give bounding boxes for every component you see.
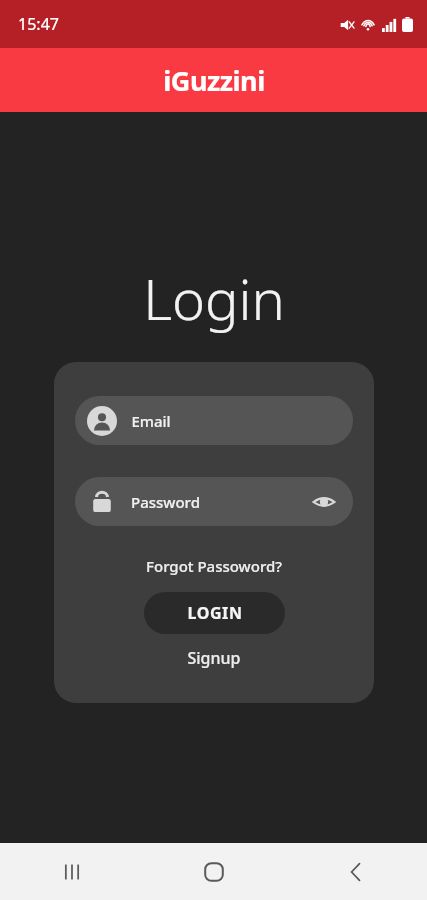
- button[interactable]: Back: [285, 843, 427, 900]
- button[interactable]: Forgot Passoword?: [140, 554, 288, 578]
- staticText: Email: [131, 411, 171, 431]
- staticText: LOGIN: [187, 602, 243, 624]
- staticText: iGuzzini: [163, 62, 265, 99]
- button[interactable]: Recent apps: [0, 843, 143, 900]
- button[interactable]: Password: [75, 477, 353, 526]
- staticText: Signup: [187, 647, 241, 669]
- button[interactable]: Home: [143, 843, 285, 900]
- button[interactable]: Email: [75, 396, 353, 445]
- staticText: Login: [143, 260, 285, 336]
- staticText: Password: [131, 492, 200, 512]
- staticText: 15:47: [18, 13, 59, 35]
- button[interactable]: Signup: [179, 644, 249, 672]
- staticText: Forgot Passoword?: [146, 556, 282, 576]
- button[interactable]: LOGIN: [144, 592, 285, 634]
- button[interactable]: Show password: [311, 489, 337, 515]
